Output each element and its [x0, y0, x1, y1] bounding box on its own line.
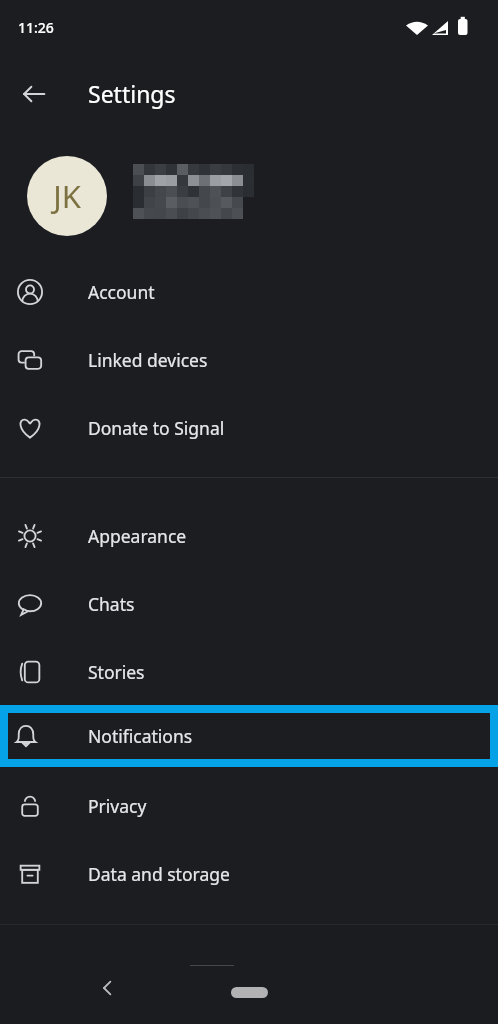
button[interactable]: Donate to Signal	[0, 394, 498, 462]
staticText: Stories	[88, 660, 145, 684]
button[interactable]: JK	[0, 136, 498, 256]
staticText: 11:26	[18, 18, 54, 37]
staticText: Privacy	[88, 794, 147, 818]
staticText: Linked devices	[88, 348, 208, 372]
staticText: Settings	[88, 78, 176, 109]
staticText: Chats	[88, 592, 135, 616]
button[interactable]: Chats	[0, 570, 498, 638]
button[interactable]: Linked devices	[0, 326, 498, 394]
button[interactable]: Privacy	[0, 772, 498, 840]
button[interactable]: Appearance	[0, 502, 498, 570]
button[interactable]: Notifications	[8, 713, 490, 759]
button[interactable]: Account	[0, 258, 498, 326]
button[interactable]: Home	[231, 987, 268, 998]
button[interactable]: Data and storage	[0, 840, 498, 908]
staticText: Data and storage	[88, 862, 230, 886]
staticText: Notifications	[88, 724, 193, 748]
staticText: JK	[53, 175, 81, 217]
button[interactable]: Back	[10, 70, 58, 118]
staticText: Appearance	[88, 524, 187, 548]
button[interactable]: Back	[82, 962, 134, 1014]
staticText: Account	[88, 280, 155, 304]
button[interactable]: Stories	[0, 638, 498, 706]
staticText: Donate to Signal	[88, 416, 225, 440]
